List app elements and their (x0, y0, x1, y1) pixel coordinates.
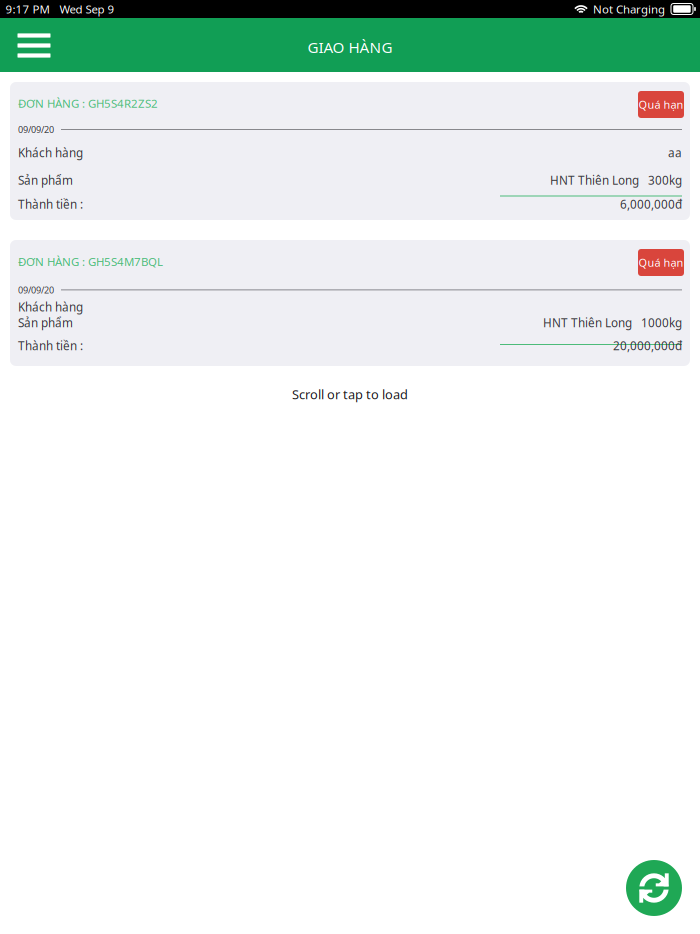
staticText: Thành tiền : (18, 338, 83, 354)
staticText: Sản phẩm (18, 172, 73, 188)
staticText: Khách hàng (18, 145, 83, 161)
button[interactable]: Quá hạn (638, 91, 684, 118)
staticText: 09/09/20 (18, 123, 54, 136)
staticText: Sản phẩm (18, 315, 73, 331)
staticText: Scroll or tap to load (292, 385, 408, 403)
staticText: 09/09/20 (18, 284, 54, 296)
staticText: ĐƠN HÀNG : GH5S4M7BQL (18, 254, 163, 269)
button[interactable]: Refresh (626, 860, 682, 916)
staticText: 9:17 PM (5, 1, 49, 17)
button[interactable]: ĐƠN HÀNG : GH5S4R2ZS2 (10, 82, 690, 220)
staticText: Khách hàng (18, 299, 83, 315)
staticText: Quá hạn (638, 255, 683, 270)
staticText: 20,000,000đ (613, 338, 682, 354)
staticText: HNT Thiên Long 300kg (550, 172, 682, 188)
staticText: Not Charging (593, 1, 665, 17)
staticText: Quá hạn (638, 97, 683, 112)
staticText: 6,000,000đ (620, 196, 682, 212)
staticText: ĐƠN HÀNG : GH5S4R2ZS2 (18, 95, 158, 111)
staticText: Wed Sep 9 (59, 1, 114, 17)
button[interactable]: ĐƠN HÀNG : GH5S4M7BQL (10, 240, 690, 366)
staticText: HNT Thiên Long 1000kg (543, 315, 682, 331)
staticText: GIAO HÀNG (307, 37, 392, 57)
button[interactable]: Quá hạn (638, 249, 684, 276)
staticText: Thành tiền : (18, 196, 83, 212)
staticText: aa (668, 145, 682, 161)
button[interactable]: Menu (8, 21, 59, 69)
